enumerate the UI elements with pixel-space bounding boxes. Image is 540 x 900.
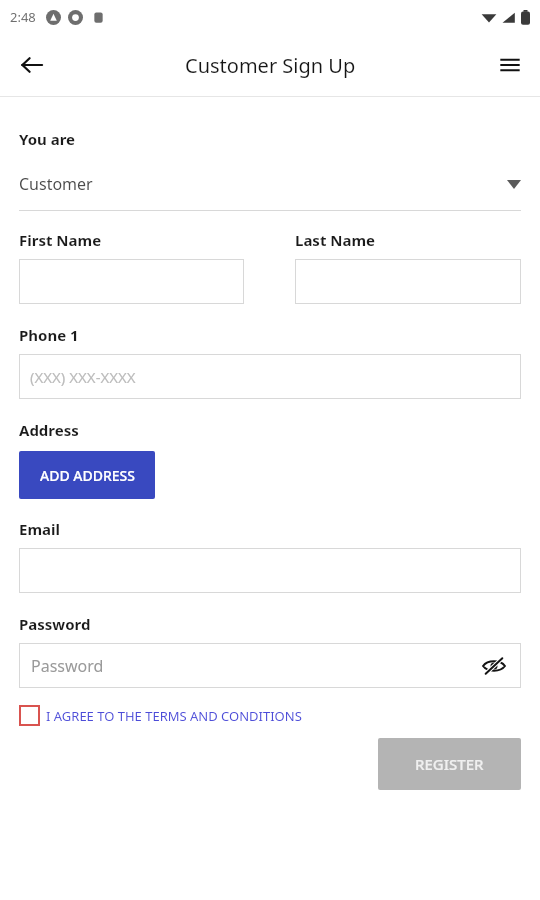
staticText: Address: [19, 420, 79, 440]
staticText: Phone 1: [19, 325, 79, 345]
button[interactable]: (XXX) XXX-XXXX: [19, 354, 521, 399]
button[interactable]: ADD ADDRESS: [19, 451, 155, 499]
button[interactable]: Menu: [488, 43, 532, 87]
staticText: 2:48: [10, 8, 36, 26]
button[interactable]: I AGREE TO THE TERMS AND CONDITIONS: [19, 705, 302, 726]
staticText: You are: [19, 129, 76, 149]
staticText: Customer: [19, 173, 93, 195]
staticText: (XXX) XXX-XXXX: [30, 367, 136, 387]
button[interactable]: [295, 259, 521, 304]
staticText: REGISTER: [415, 754, 484, 774]
staticText: Customer Sign Up: [185, 52, 356, 79]
button[interactable]: Customer: [19, 167, 521, 201]
button[interactable]: Password: [19, 643, 521, 688]
staticText: Password: [31, 655, 104, 677]
button[interactable]: REGISTER: [378, 738, 521, 790]
staticText: Password: [19, 614, 91, 634]
staticText: ADD ADDRESS: [40, 466, 135, 485]
button[interactable]: Show password: [479, 651, 509, 681]
button[interactable]: [19, 548, 521, 593]
staticText: Email: [19, 519, 60, 539]
button[interactable]: [19, 259, 244, 304]
staticText: Last Name: [295, 230, 376, 250]
button[interactable]: Back: [10, 43, 54, 87]
staticText: I AGREE TO THE TERMS AND CONDITIONS: [46, 707, 302, 725]
staticText: First Name: [19, 230, 102, 250]
